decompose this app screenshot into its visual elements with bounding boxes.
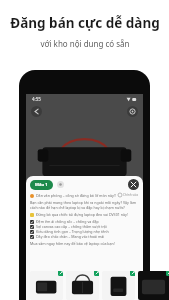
button[interactable]: Product photo 2 [66, 271, 99, 300]
button[interactable]: Share [127, 106, 138, 117]
staticText: Đừng bỏ qua chiếc túi đựng laptop đeo va… [36, 212, 139, 217]
staticText: Sợi canvas cao cấp – chống thấm vượt trộ… [36, 224, 107, 229]
staticText: Đệm êm ái chống sốc – chống va đập [36, 219, 99, 224]
staticText: Kiểu dáng tinh gọn – Trọng lượng nhẹ tên… [36, 229, 109, 234]
staticText: 4:55 [32, 96, 41, 102]
staticText: với kho nội dung có sẵn [40, 38, 130, 49]
staticText: Bạn cần phải mang theo laptop khi ra ngo… [30, 200, 139, 210]
staticText: Mua sắm ngay hôm nay để bảo vệ laptop củ… [30, 241, 115, 246]
staticText: Chỉnh sửa [123, 193, 139, 197]
staticText: Dân văn phòng – công sở đừng bỏ lỡ món n… [36, 193, 116, 198]
staticText: Dây đeo chắc chắn – Mang vác thoải mái [36, 234, 105, 239]
button[interactable]: Product photo 3 [102, 271, 135, 300]
staticText: Đăng bán cực dễ dàng [10, 14, 160, 32]
button[interactable]: Close [128, 179, 139, 190]
staticText: Mẫu 1 [35, 182, 48, 188]
button[interactable]: Chỉnh sửa [118, 193, 139, 197]
button[interactable]: Back [31, 106, 42, 117]
button[interactable]: Product photo 1 [30, 271, 63, 300]
button[interactable]: Product photo 4 [138, 271, 169, 300]
button[interactable]: More templates [57, 181, 64, 188]
button[interactable]: Mẫu 1 [30, 180, 53, 190]
